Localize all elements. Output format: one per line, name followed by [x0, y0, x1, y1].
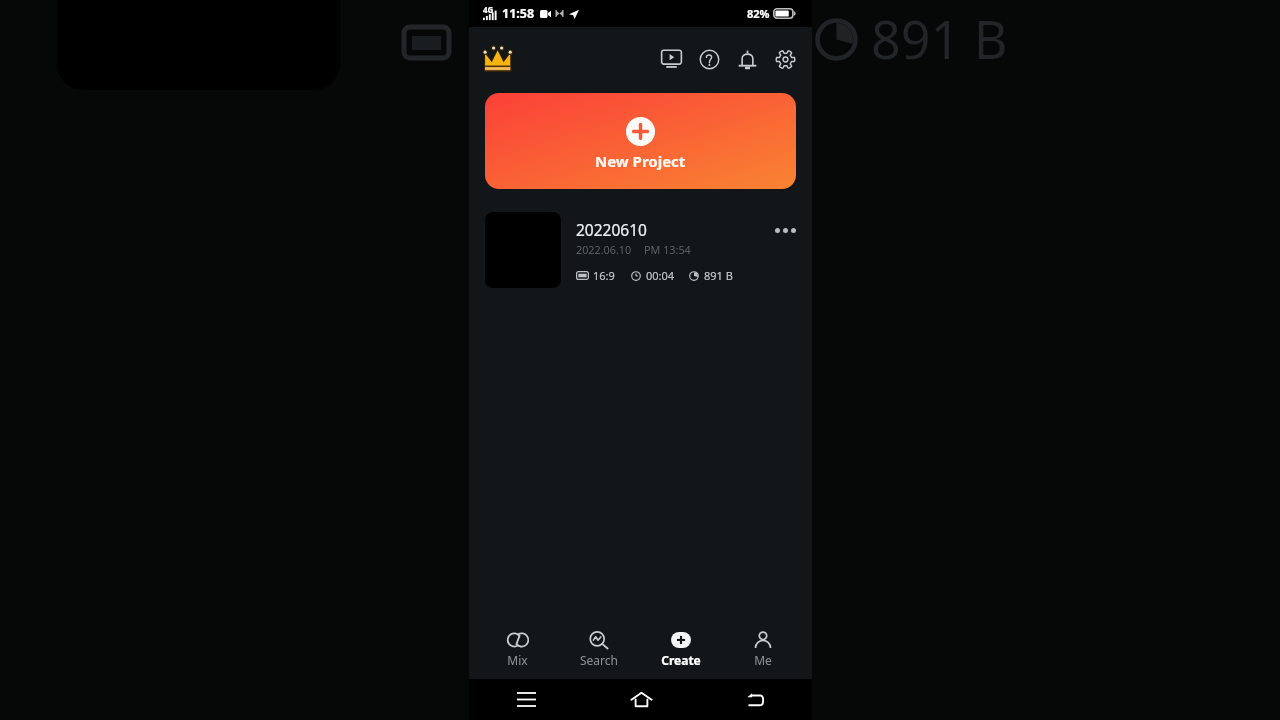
button[interactable]: Search [558, 613, 640, 676]
button[interactable]: Recents [469, 679, 584, 720]
staticText: 16:9 [593, 268, 615, 283]
button[interactable]: Tutorial [657, 45, 685, 73]
button[interactable]: Me [722, 613, 804, 676]
button[interactable]: Notifications [733, 45, 761, 73]
staticText: Create [661, 652, 701, 668]
button[interactable]: 20220610 [485, 212, 798, 288]
staticText: Mix [507, 652, 528, 668]
staticText: PM 13:54 [644, 242, 691, 257]
staticText: 4G [483, 4, 494, 15]
button[interactable]: Help [695, 45, 723, 73]
staticText: 82% [747, 6, 770, 21]
button[interactable]: Back [698, 679, 812, 720]
button[interactable]: Home [584, 679, 698, 720]
staticText: New Project [595, 151, 686, 171]
button[interactable]: New Project [485, 93, 796, 189]
staticText: Search [580, 652, 618, 668]
staticText: 20220610 [576, 219, 647, 240]
staticText: 891 B [871, 3, 1008, 74]
staticText: 11:58 [502, 5, 535, 22]
staticText: 2022.06.10 [576, 242, 632, 257]
staticText: 891 B [704, 268, 733, 283]
staticText: 00:04 [646, 268, 675, 283]
staticText: Me [754, 652, 772, 668]
button[interactable]: Create [640, 613, 722, 676]
button[interactable]: Pro [480, 42, 514, 76]
button[interactable]: More options [768, 213, 802, 247]
button[interactable]: Settings [771, 45, 799, 73]
button[interactable]: Mix [477, 613, 558, 676]
